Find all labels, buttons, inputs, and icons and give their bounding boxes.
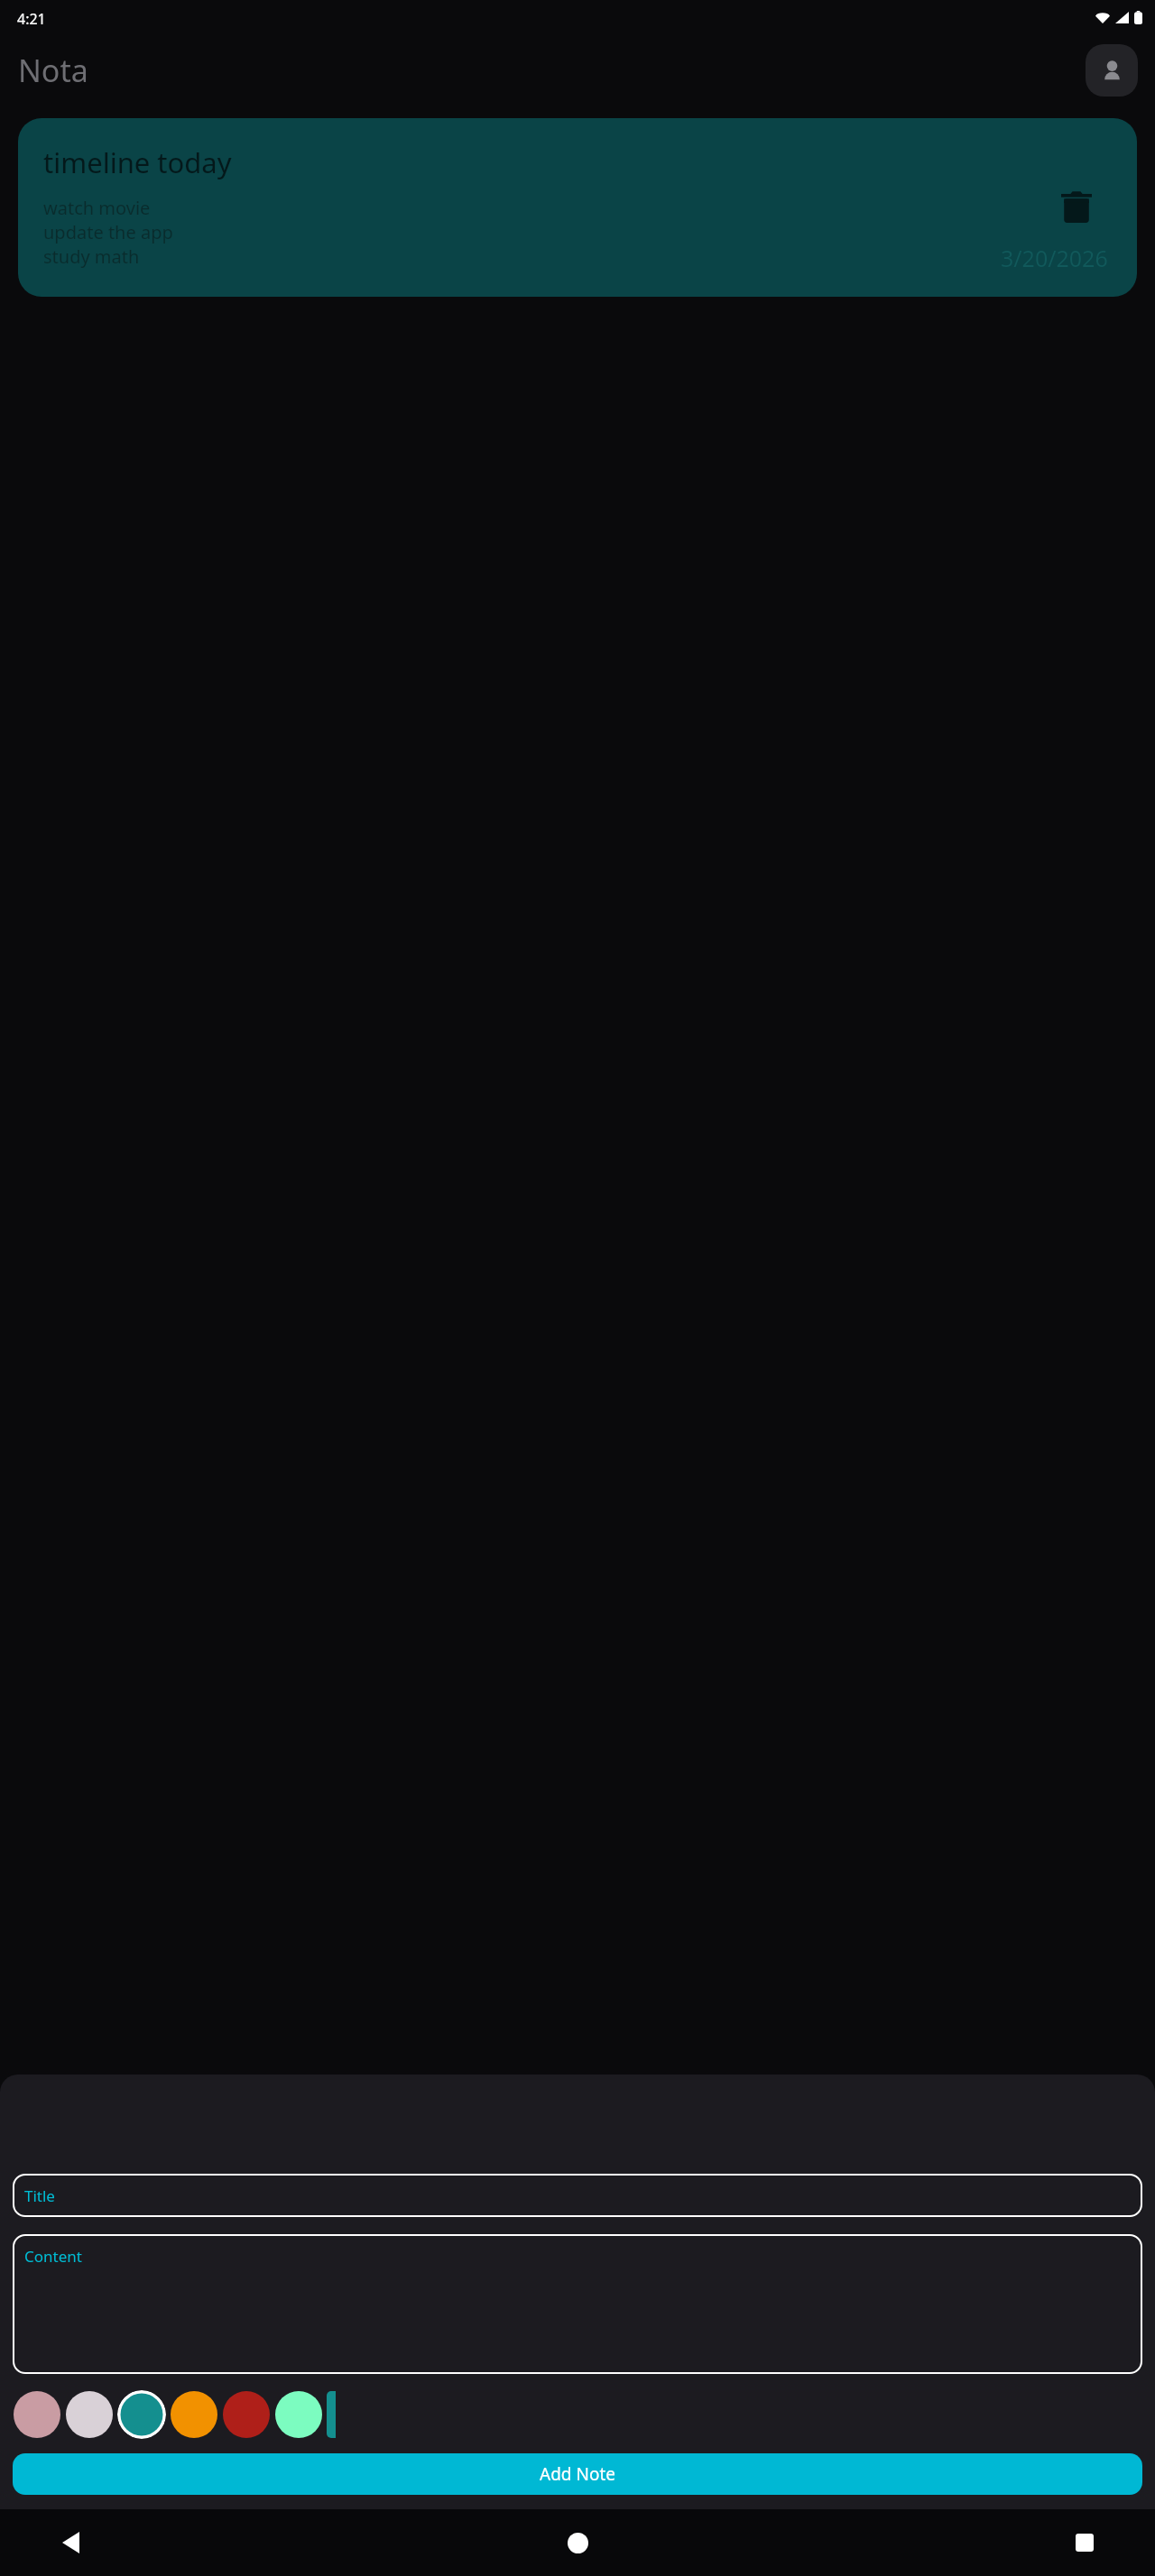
button[interactable]: Content	[13, 2234, 1142, 2374]
button[interactable]: More colours	[327, 2391, 336, 2438]
button[interactable]: Profile	[1086, 44, 1138, 97]
button[interactable]: Colour option	[13, 2390, 61, 2439]
button[interactable]: Colour option	[117, 2390, 166, 2439]
button[interactable]: Recent apps	[1065, 2523, 1104, 2562]
staticText: study math	[43, 244, 140, 269]
button[interactable]: timeline today	[18, 118, 1137, 297]
button[interactable]: Delete note	[1058, 189, 1095, 226]
button[interactable]: Colour option	[274, 2390, 323, 2439]
button[interactable]: Back	[51, 2523, 90, 2562]
button[interactable]: Colour option	[65, 2390, 114, 2439]
button[interactable]: Title	[13, 2174, 1142, 2217]
staticText: Content	[24, 2246, 82, 2267]
button[interactable]: Colour option	[170, 2390, 218, 2439]
staticText: Add Note	[540, 2462, 615, 2486]
staticText: timeline today	[43, 143, 232, 181]
staticText: Nota	[18, 50, 88, 91]
button[interactable]: Add Note	[13, 2453, 1142, 2495]
staticText: 3/20/2026	[1001, 243, 1108, 273]
staticText: 4:21	[17, 9, 46, 29]
button[interactable]: Colour option	[222, 2390, 271, 2439]
staticText: update the app	[43, 220, 173, 244]
staticText: Title	[24, 2185, 55, 2206]
button[interactable]: Home	[558, 2523, 597, 2562]
staticText: watch movie	[43, 196, 151, 220]
